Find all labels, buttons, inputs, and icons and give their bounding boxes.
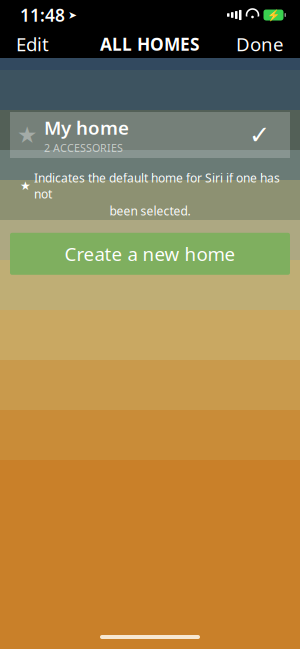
staticText: Edit — [16, 32, 49, 56]
staticText: ALL HOMES — [100, 32, 200, 55]
staticText: Done — [236, 32, 284, 56]
staticText: been selected. — [109, 203, 190, 219]
button[interactable]: Done — [220, 26, 300, 62]
staticText: My home — [44, 115, 129, 140]
staticText: Create a new home — [64, 241, 235, 266]
staticText: ➤ — [68, 9, 77, 21]
staticText: Indicates the default home for Siri if o… — [34, 170, 280, 202]
staticText: ⚡ — [267, 9, 280, 21]
staticText: ★ — [20, 179, 31, 193]
staticText: ✓ — [249, 121, 270, 149]
button[interactable]: Edit — [0, 26, 65, 62]
button[interactable]: ★ — [10, 112, 290, 158]
staticText: 2 ACCESSORIES — [44, 141, 123, 155]
button[interactable]: Create a new home — [10, 233, 290, 275]
staticText: ★ — [17, 122, 37, 148]
staticText: 11:48 — [20, 3, 65, 26]
